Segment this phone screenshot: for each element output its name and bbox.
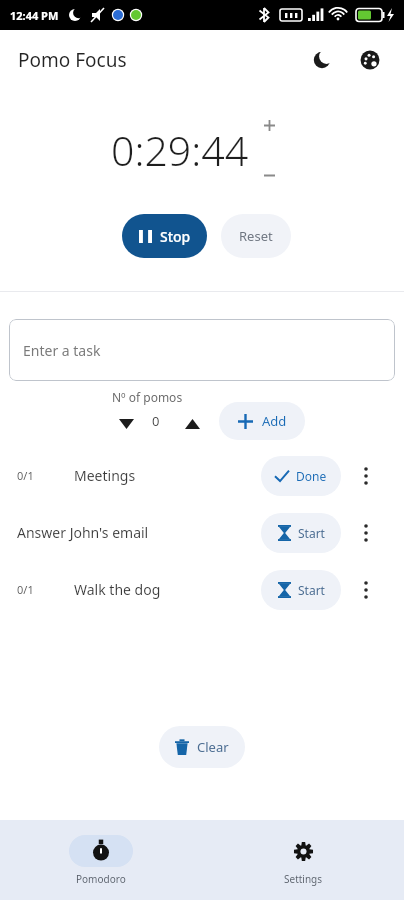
staticText: Reset: [239, 227, 273, 245]
staticText: Stop: [160, 227, 191, 246]
button[interactable]: Decrease time: [252, 158, 286, 192]
staticText: Start: [298, 525, 325, 541]
staticText: Walk the dog: [74, 580, 161, 599]
button[interactable]: Change theme: [348, 38, 392, 82]
button[interactable]: Reset: [221, 214, 291, 258]
staticText: Clear: [197, 738, 229, 756]
button[interactable]: Pomodoro: [69, 835, 133, 886]
button[interactable]: 0/1: [0, 447, 404, 504]
staticText: Add: [262, 412, 287, 430]
button[interactable]: More options: [348, 458, 384, 494]
button[interactable]: Stop: [122, 214, 207, 258]
button[interactable]: Done: [261, 456, 341, 496]
staticText: 12:44 PM: [10, 8, 59, 23]
staticText: Pomo Focus: [18, 47, 127, 73]
staticText: Enter a task: [23, 341, 101, 360]
button[interactable]: Toggle dark mode: [300, 38, 344, 82]
staticText: Pomodoro: [76, 872, 126, 886]
button[interactable]: Increase pomos: [174, 406, 210, 442]
button[interactable]: Settings: [271, 835, 335, 886]
button[interactable]: Answer John's email: [0, 504, 404, 561]
button[interactable]: More options: [348, 515, 384, 551]
button[interactable]: Enter a task: [9, 319, 395, 381]
staticText: Nº of pomos: [112, 389, 183, 405]
button[interactable]: Clear: [159, 726, 245, 768]
staticText: Done: [296, 468, 327, 484]
button[interactable]: Decrease pomos: [108, 406, 144, 442]
button[interactable]: More options: [348, 572, 384, 608]
button[interactable]: Increase time: [252, 108, 286, 142]
button[interactable]: Start: [261, 570, 341, 610]
staticText: 0/1: [17, 582, 34, 597]
staticText: 0: [152, 412, 160, 430]
button[interactable]: Add: [219, 402, 305, 440]
button[interactable]: Start: [261, 513, 341, 553]
staticText: Meetings: [74, 466, 136, 485]
staticText: 0:29:44: [111, 122, 249, 178]
staticText: Answer John's email: [17, 523, 149, 542]
button[interactable]: 0/1: [0, 561, 404, 618]
staticText: Start: [298, 582, 325, 598]
staticText: Settings: [284, 872, 323, 886]
staticText: 0/1: [17, 468, 34, 483]
